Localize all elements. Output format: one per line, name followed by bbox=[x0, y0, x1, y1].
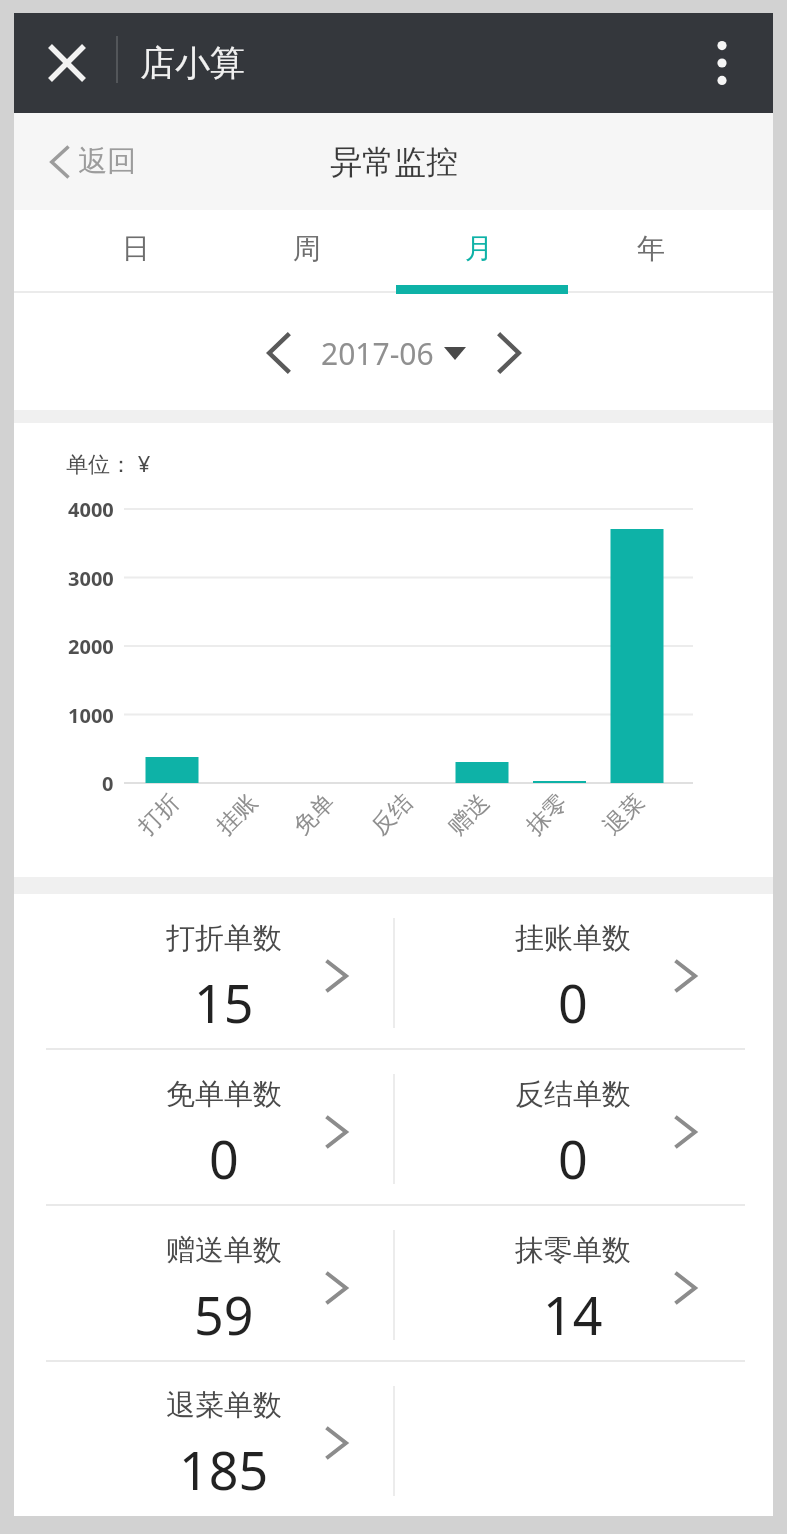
staticText: 0 bbox=[209, 1123, 239, 1194]
staticText: 0 bbox=[558, 1123, 588, 1194]
button[interactable] bbox=[697, 31, 747, 95]
button[interactable]: 返回 bbox=[50, 113, 136, 210]
button[interactable]: 日 bbox=[50, 210, 221, 286]
button[interactable]: 2017-06 bbox=[321, 333, 466, 374]
staticText: 周 bbox=[293, 231, 321, 266]
staticText: 2000 bbox=[68, 633, 114, 660]
staticText: 反结单数 bbox=[515, 1076, 631, 1113]
staticText: 返回 bbox=[78, 143, 136, 180]
staticText: 免单单数 bbox=[166, 1076, 282, 1113]
button[interactable]: 打折单数 bbox=[14, 894, 393, 1050]
staticText: 退菜单数 bbox=[166, 1387, 282, 1424]
staticText: 185 bbox=[179, 1434, 269, 1505]
staticText: 抹零单数 bbox=[515, 1232, 631, 1269]
staticText: 异常监控 bbox=[330, 142, 458, 182]
button[interactable] bbox=[255, 323, 301, 383]
staticText: 1000 bbox=[68, 702, 114, 729]
button[interactable]: 反结单数 bbox=[393, 1050, 773, 1206]
button[interactable] bbox=[486, 323, 532, 383]
button[interactable]: 退菜单数 bbox=[14, 1362, 393, 1516]
staticText: 日 bbox=[122, 231, 150, 266]
staticText: 4000 bbox=[68, 496, 114, 523]
staticText: 15 bbox=[194, 967, 254, 1038]
staticText: 挂账单数 bbox=[515, 920, 631, 957]
staticText: 挂账 bbox=[210, 788, 263, 841]
staticText: 反结 bbox=[365, 788, 418, 841]
staticText: 抹零 bbox=[520, 788, 573, 841]
button[interactable]: 挂账单数 bbox=[393, 894, 773, 1050]
staticText: 赠送 bbox=[442, 788, 495, 841]
staticText: 店小算 bbox=[140, 41, 245, 85]
staticText: 打折单数 bbox=[166, 920, 282, 957]
staticText: 14 bbox=[543, 1279, 603, 1350]
staticText: 月 bbox=[465, 231, 493, 266]
staticText: 2017-06 bbox=[321, 333, 434, 374]
button[interactable]: 年 bbox=[565, 210, 737, 286]
staticText: 59 bbox=[194, 1279, 254, 1350]
button[interactable] bbox=[36, 32, 98, 94]
staticText: 打折 bbox=[132, 788, 185, 841]
button[interactable]: 月 bbox=[393, 210, 565, 286]
button[interactable]: 免单单数 bbox=[14, 1050, 393, 1206]
staticText: 退菜 bbox=[597, 788, 650, 841]
staticText: 0 bbox=[102, 770, 114, 797]
staticText: 3000 bbox=[68, 565, 114, 592]
button[interactable]: 赠送单数 bbox=[14, 1206, 393, 1362]
staticText: 免单 bbox=[287, 788, 340, 841]
staticText: 单位： ¥ bbox=[66, 448, 151, 478]
staticText: 0 bbox=[558, 967, 588, 1038]
button[interactable]: 周 bbox=[221, 210, 393, 286]
button[interactable]: 抹零单数 bbox=[393, 1206, 773, 1362]
staticText: 赠送单数 bbox=[166, 1232, 282, 1269]
staticText: 年 bbox=[637, 231, 665, 266]
